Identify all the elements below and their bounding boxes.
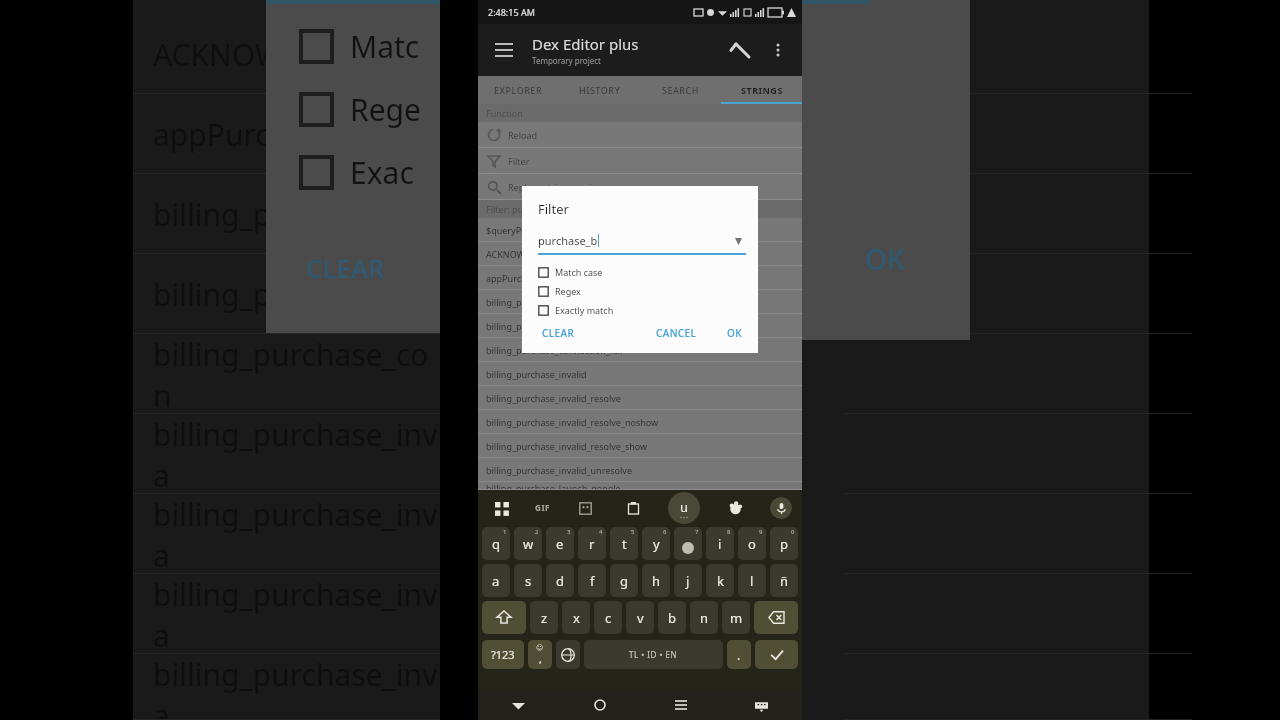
button[interactable]: b	[658, 601, 686, 634]
button[interactable]: EXPLORER	[478, 76, 559, 104]
button[interactable]: billing_purchase_connection_fail	[478, 338, 802, 362]
staticText: f	[590, 572, 595, 590]
button[interactable]: Recent apps	[640, 690, 721, 720]
button[interactable]: HISTORY	[559, 76, 640, 104]
button[interactable]: k	[706, 564, 734, 597]
staticText: billing_purchase_invalid	[486, 368, 587, 380]
button[interactable]: ñ	[770, 564, 798, 597]
button[interactable]: Hide keyboard	[478, 690, 559, 720]
button[interactable]: billing_purchase_invalid_resolve_show	[478, 434, 802, 458]
button[interactable]: Change language	[556, 640, 580, 669]
staticText: CLEAR	[542, 326, 575, 340]
button[interactable]: billing_purchase_cancel	[478, 290, 802, 314]
button[interactable]: Enter	[755, 640, 798, 669]
button[interactable]: Stickers	[572, 495, 598, 521]
button[interactable]: l	[738, 564, 766, 597]
button[interactable]: g	[610, 564, 638, 597]
button[interactable]: z	[530, 601, 558, 634]
staticText: GIF	[535, 502, 551, 513]
button[interactable]: .	[727, 640, 751, 669]
button[interactable]: STRINGS	[721, 76, 802, 104]
button[interactable]: Regex	[538, 285, 581, 297]
button[interactable]: $queryPurchaseHistoryAsync	[478, 218, 802, 242]
button[interactable]: Build	[722, 32, 758, 68]
button[interactable]: q	[482, 527, 510, 560]
button[interactable]: y	[642, 527, 670, 560]
button[interactable]: Home	[559, 690, 640, 720]
staticText: Temporary project	[532, 55, 601, 66]
staticText: .	[737, 647, 741, 663]
button[interactable]: Match case	[538, 266, 603, 278]
button[interactable]: s	[514, 564, 542, 597]
button[interactable]: Toolbar	[488, 495, 514, 521]
button[interactable]: billing_purchase_launch_google	[478, 482, 802, 490]
button[interactable]: Voice input	[770, 497, 792, 519]
button[interactable]: appPurchase	[478, 266, 802, 290]
button[interactable]: CLEAR	[538, 323, 579, 343]
staticText: 1	[503, 528, 507, 536]
button[interactable]: ?123	[482, 640, 524, 669]
staticText: e	[556, 535, 564, 553]
staticText: ñ	[780, 572, 789, 590]
button[interactable]: Clipboard	[620, 495, 646, 521]
button[interactable]: ACKNOWLEDGE_PURCHASE	[478, 242, 802, 266]
button[interactable]: u	[668, 492, 700, 524]
button[interactable]: CANCEL	[652, 323, 701, 343]
staticText: billing_purchase_cancel	[486, 296, 586, 308]
button[interactable]: Show suggestions	[730, 233, 746, 249]
staticText: 9	[759, 528, 763, 536]
button[interactable]: x	[562, 601, 590, 634]
button[interactable]: w	[514, 527, 542, 560]
button[interactable]: a	[482, 564, 510, 597]
button[interactable]: j	[674, 564, 702, 597]
button[interactable]: n	[690, 601, 718, 634]
button[interactable]: billing_purchase_complete	[478, 314, 802, 338]
staticText: HISTORY	[579, 84, 621, 96]
staticText: billing_purchase_complete	[486, 320, 599, 332]
button[interactable]: p	[770, 527, 798, 560]
button[interactable]: f	[578, 564, 606, 597]
staticText: Dex Editor plus	[532, 34, 639, 54]
button[interactable]: billing_purchase_invalid	[478, 362, 802, 386]
button[interactable]: u	[674, 527, 702, 560]
staticText: 4	[599, 528, 603, 536]
button[interactable]: t	[610, 527, 638, 560]
button[interactable]: Reload	[478, 122, 802, 148]
button[interactable]: Emoji and comma	[528, 640, 552, 669]
button[interactable]: Switch keyboard	[721, 690, 802, 720]
button[interactable]: h	[642, 564, 670, 597]
staticText: p	[780, 535, 788, 553]
button[interactable]: Replace string preview	[478, 174, 802, 200]
staticText: b	[668, 609, 676, 627]
staticText: v	[637, 609, 644, 627]
button[interactable]: o	[738, 527, 766, 560]
staticText: m	[730, 609, 743, 627]
button[interactable]: v	[626, 601, 654, 634]
staticText: c	[605, 609, 612, 627]
button[interactable]: d	[546, 564, 574, 597]
staticText: 2	[535, 528, 539, 536]
button[interactable]: Backspace	[754, 601, 798, 634]
button[interactable]: billing_purchase_invalid_unresolve	[478, 458, 802, 482]
button[interactable]: m	[722, 601, 750, 634]
staticText: w	[523, 535, 534, 553]
button[interactable]: c	[594, 601, 622, 634]
button[interactable]: e	[546, 527, 574, 560]
button[interactable]: SEARCH	[640, 76, 721, 104]
staticText: OK	[727, 326, 742, 340]
button[interactable]: Emoji	[722, 495, 748, 521]
button[interactable]: billing_purchase_invalid_resolve	[478, 386, 802, 410]
button[interactable]: billing_purchase_invalid_resolve_noshow	[478, 410, 802, 434]
button[interactable]: Shift	[482, 601, 526, 634]
button[interactable]: i	[706, 527, 734, 560]
staticText: CANCEL	[656, 326, 697, 340]
button[interactable]: Exactly match	[538, 304, 614, 316]
button[interactable]: Filter	[478, 148, 802, 174]
button[interactable]: TL • ID • EN	[584, 640, 723, 669]
staticText: billing_purchase_invalid_resolve_show	[486, 440, 648, 452]
button[interactable]: Open navigation drawer	[486, 32, 522, 68]
button[interactable]: OK	[723, 323, 746, 343]
staticText: CLEAR	[306, 250, 385, 285]
button[interactable]: r	[578, 527, 606, 560]
button[interactable]: More options	[760, 32, 796, 68]
